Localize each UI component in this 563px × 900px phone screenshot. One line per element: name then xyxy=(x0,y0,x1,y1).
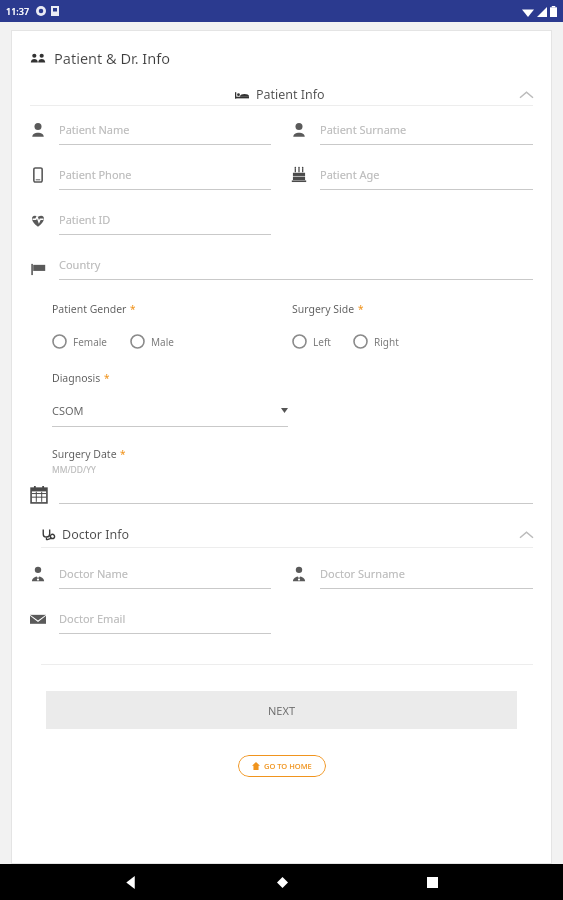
button[interactable]: Doctor Info xyxy=(11,526,552,543)
staticText: Doctor Surname xyxy=(320,566,405,581)
button[interactable]: Doctor Name xyxy=(30,566,271,589)
staticText: Diagnosis xyxy=(52,371,101,385)
button[interactable]: Doctor Email xyxy=(30,611,271,634)
staticText: Patient Age xyxy=(320,167,380,182)
button[interactable] xyxy=(30,486,533,504)
staticText: Doctor Email xyxy=(59,611,126,626)
button[interactable]: CSOM xyxy=(52,403,288,427)
staticText: Left xyxy=(313,335,331,349)
button[interactable]: GO TO HOME xyxy=(238,755,326,777)
staticText: Doctor Info xyxy=(62,526,130,543)
staticText: Surgery Side xyxy=(292,302,355,316)
staticText: Country xyxy=(59,257,101,272)
button[interactable]: NEXT xyxy=(46,691,517,729)
staticText: GO TO HOME xyxy=(264,761,312,771)
staticText: NEXT xyxy=(268,703,296,718)
staticText: Patient Info xyxy=(256,86,325,103)
staticText: Surgery Date xyxy=(52,447,117,461)
staticText: Patient Name xyxy=(59,122,130,137)
button[interactable]: Patient Name xyxy=(30,122,271,145)
button[interactable]: Patient Age xyxy=(291,167,533,190)
staticText: * xyxy=(104,371,110,385)
staticText: Female xyxy=(73,335,108,349)
staticText: * xyxy=(120,447,126,461)
button[interactable]: Patient Info xyxy=(11,86,552,103)
staticText: * xyxy=(358,302,364,316)
staticText: Patient ID xyxy=(59,212,111,227)
staticText: * xyxy=(130,302,136,316)
button[interactable]: Right xyxy=(353,334,399,349)
staticText: MM/DD/YY xyxy=(52,464,96,476)
staticText: Patient Surname xyxy=(320,122,407,137)
button[interactable]: Home xyxy=(262,864,302,900)
staticText: CSOM xyxy=(52,403,281,418)
button[interactable]: Recent apps xyxy=(412,864,452,900)
button[interactable]: Patient ID xyxy=(30,212,271,235)
button[interactable]: Doctor Surname xyxy=(291,566,533,589)
button[interactable]: Patient Phone xyxy=(30,167,271,190)
staticText: Doctor Name xyxy=(59,566,129,581)
button[interactable]: Patient Surname xyxy=(291,122,533,145)
button[interactable]: Back xyxy=(111,864,151,900)
staticText: Right xyxy=(374,335,399,349)
staticText: Patient & Dr. Info xyxy=(54,48,170,68)
button[interactable]: Male xyxy=(130,334,174,349)
button[interactable]: Female xyxy=(52,334,108,349)
button[interactable]: Left xyxy=(292,334,331,349)
staticText: Male xyxy=(151,335,174,349)
staticText: Patient Phone xyxy=(59,167,132,182)
staticText: 11:37 xyxy=(6,5,30,17)
staticText: Patient Gender xyxy=(52,302,127,316)
